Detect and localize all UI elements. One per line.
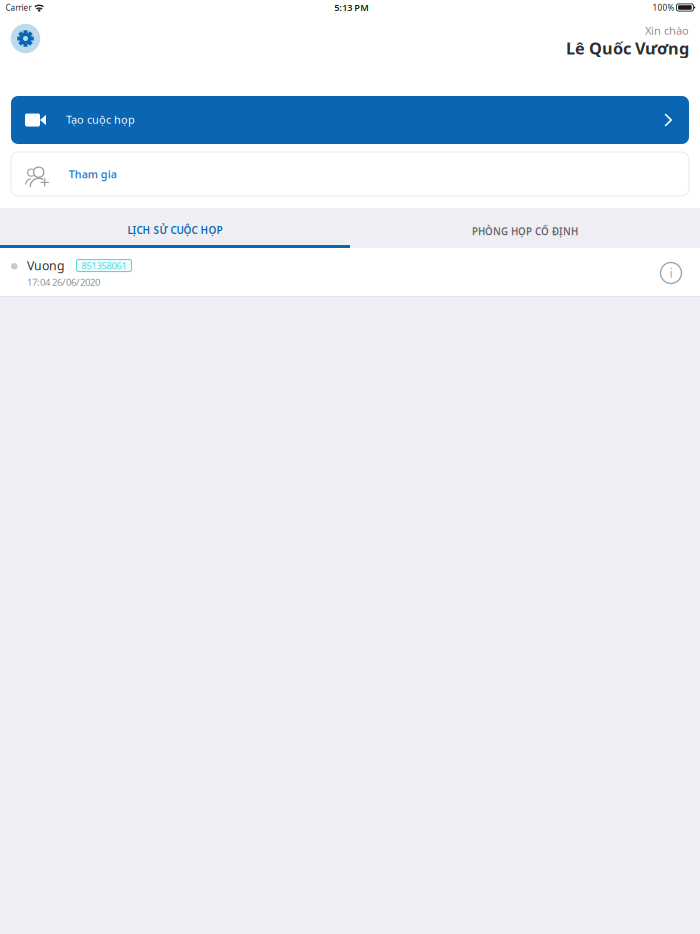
staticText: Carrier (5, 2, 31, 13)
staticText: LỊCH SỬ CUỘC HỌP (127, 223, 222, 237)
button[interactable]: LỊCH SỬ CUỘC HỌP (0, 208, 350, 248)
button[interactable]: Settings (0, 16, 51, 60)
button[interactable]: PHÒNG HỌP CỐ ĐỊNH (350, 208, 700, 248)
staticText: Lê Quốc Vương (566, 37, 689, 59)
button[interactable]: Tạo cuộc họp (11, 96, 689, 144)
staticText: 100% (652, 2, 674, 13)
staticText: i (669, 265, 672, 281)
button[interactable]: Meeting info (656, 258, 686, 288)
button[interactable]: Vuong (0, 248, 700, 296)
staticText: 851358061 (81, 259, 126, 272)
staticText: Tham gia (69, 167, 117, 181)
staticText: Vuong (27, 257, 65, 274)
staticText: Tạo cuộc họp (66, 112, 135, 127)
staticText: PHÒNG HỌP CỐ ĐỊNH (472, 225, 578, 238)
staticText: 17:04 26/06/2020 (27, 275, 100, 289)
button[interactable]: Tham gia (11, 152, 689, 196)
staticText: Xin chào (645, 23, 689, 38)
staticText: 5:13 PM (334, 1, 369, 14)
